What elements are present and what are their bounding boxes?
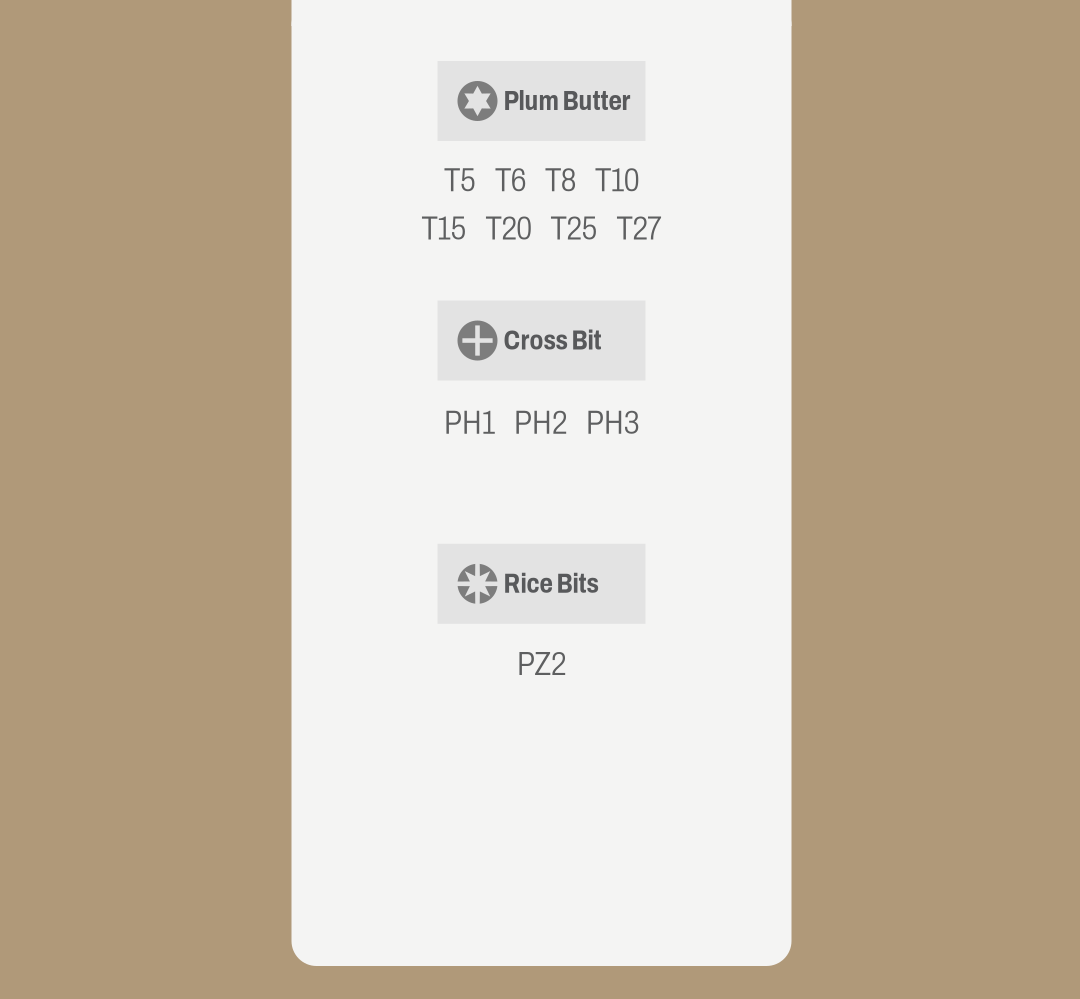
staticText: T8 — [545, 162, 576, 198]
staticText: T15 — [421, 210, 466, 247]
staticText: T20 — [485, 210, 531, 247]
button[interactable]: Plum Butter — [437, 61, 645, 141]
button[interactable]: Rice Bits — [437, 544, 645, 624]
staticText: Cross Bit — [503, 326, 601, 355]
staticText: T25 — [550, 210, 597, 247]
staticText: T27 — [616, 210, 661, 247]
staticText: PZ2 — [517, 646, 566, 682]
staticText: PH3 — [586, 404, 639, 441]
staticText: PH1 — [444, 404, 495, 441]
staticText: Plum Butter — [503, 86, 630, 115]
staticText: Rice Bits — [503, 569, 598, 598]
staticText: T6 — [495, 162, 526, 198]
staticText: T10 — [595, 162, 639, 198]
staticText: PH2 — [514, 404, 567, 441]
button[interactable]: Cross Bit — [437, 300, 645, 380]
staticText: T5 — [444, 162, 476, 198]
